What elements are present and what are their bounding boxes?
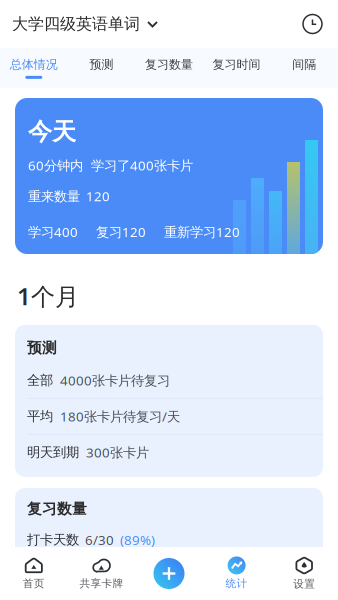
staticText: 统计 — [226, 577, 248, 590]
button[interactable]: 预测 — [68, 48, 135, 88]
button[interactable]: 共享卡牌 — [68, 547, 135, 600]
staticText: 共享卡牌 — [79, 577, 123, 590]
staticText: 重来数量 120 — [28, 187, 110, 205]
button[interactable]: 统计 — [203, 547, 270, 600]
staticText: 大学四级英语单词 — [12, 14, 140, 34]
staticText: (89%) — [120, 531, 155, 549]
button[interactable]: 复习时间 — [203, 48, 270, 88]
staticText: 6/30 — [85, 531, 114, 549]
button[interactable]: Add — [135, 547, 203, 600]
staticText: 复习时间 — [213, 57, 261, 72]
staticText: 今天 — [28, 117, 76, 146]
staticText: 复习数量 — [27, 500, 87, 518]
button[interactable]: 首页 — [0, 547, 68, 600]
staticText: 首页 — [23, 577, 45, 590]
staticText: 总体情况 — [10, 57, 58, 72]
staticText: 60分钟内 学习了400张卡片 — [28, 156, 193, 174]
button[interactable]: 大学四级英语单词 — [12, 8, 158, 40]
staticText: 1个月 — [17, 280, 79, 312]
staticText: 全部 — [27, 372, 53, 389]
staticText: 学习400 复习120 重新学习120 — [28, 223, 240, 241]
staticText: 平均 — [27, 408, 53, 425]
staticText: 4000张卡片待复习 — [60, 371, 170, 389]
staticText: 复习数量 — [145, 57, 193, 72]
staticText: 打卡天数 — [27, 532, 79, 548]
staticText: 明天到期 — [27, 444, 79, 461]
staticText: 设置 — [293, 577, 315, 590]
staticText: 预测 — [89, 57, 113, 72]
staticText: 180张卡片待复习/天 — [60, 407, 180, 425]
button[interactable]: 间隔 — [270, 48, 338, 88]
button[interactable]: 总体情况 — [0, 48, 68, 88]
staticText: 300张卡片 — [86, 443, 149, 461]
staticText: 预测 — [27, 339, 57, 357]
staticText: 间隔 — [292, 57, 316, 72]
button[interactable]: 复习数量 — [135, 48, 203, 88]
button[interactable]: History — [298, 9, 327, 38]
button[interactable]: 设置 — [270, 547, 338, 600]
